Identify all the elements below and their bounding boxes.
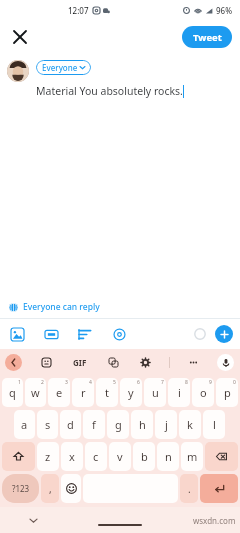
button[interactable]: b — [133, 442, 155, 471]
staticText: w — [31, 385, 40, 400]
staticText: g — [115, 417, 122, 432]
staticText: i — [178, 385, 181, 400]
button[interactable]: Voice input — [217, 354, 234, 371]
button[interactable]: o — [192, 378, 214, 407]
staticText: ?123 — [12, 483, 30, 494]
button[interactable]: i — [168, 378, 190, 407]
button[interactable]: s — [37, 410, 58, 439]
staticText: 4 — [89, 379, 92, 386]
staticText: z — [45, 449, 51, 464]
staticText: o — [200, 385, 207, 400]
staticText: Everyone can reply — [23, 301, 100, 313]
staticText: c — [93, 449, 99, 464]
button[interactable]: x — [61, 442, 83, 471]
button[interactable]: l — [203, 410, 225, 439]
staticText: 2 — [41, 379, 44, 386]
staticText: Everyone — [42, 62, 78, 73]
button[interactable]: Hide keyboard — [25, 512, 41, 528]
staticText: m — [187, 449, 198, 464]
staticText: a — [21, 417, 28, 432]
button[interactable]: Add poll — [75, 324, 95, 344]
staticText: s — [45, 417, 51, 432]
button[interactable]: Close — [6, 23, 34, 51]
staticText: y — [128, 385, 134, 400]
button[interactable]: , — [41, 474, 59, 503]
button[interactable]: Add location — [109, 324, 129, 344]
button[interactable]: y — [120, 378, 142, 407]
button[interactable]: Everyone can reply — [0, 296, 240, 318]
staticText: h — [139, 417, 146, 432]
button[interactable]: m — [181, 442, 203, 471]
button[interactable]: w — [25, 378, 46, 407]
staticText: f — [92, 417, 96, 432]
button[interactable]: q — [2, 378, 23, 407]
button[interactable]: c — [85, 442, 107, 471]
staticText: p — [224, 385, 231, 400]
button[interactable]: . — [180, 474, 198, 503]
button[interactable]: Settings — [137, 354, 154, 371]
staticText: q — [9, 385, 16, 400]
button[interactable]: Character count — [190, 324, 210, 344]
staticText: 0 — [233, 379, 236, 386]
button[interactable]: k — [179, 410, 201, 439]
staticText: Tweet — [193, 31, 222, 44]
button[interactable]: Sticker — [38, 354, 55, 371]
staticText: Material You absolutely rocks. — [36, 84, 183, 98]
staticText: GIF — [73, 357, 87, 368]
button[interactable]: Profile picture — [7, 60, 29, 82]
button[interactable]: r — [72, 378, 94, 407]
button[interactable]: f — [83, 410, 105, 439]
button[interactable]: Enter — [200, 474, 238, 503]
button[interactable]: Translate — [105, 354, 122, 371]
button[interactable]: Add tweet — [215, 325, 233, 343]
staticText: 96% — [216, 5, 232, 16]
button[interactable]: Backspace — [205, 442, 238, 471]
button[interactable]: e — [48, 378, 70, 407]
button[interactable]: GIF — [71, 355, 89, 370]
button[interactable]: z — [37, 442, 59, 471]
staticText: k — [187, 417, 193, 432]
staticText: 12:07 — [68, 5, 89, 16]
staticText: n — [165, 449, 172, 464]
staticText: 7 — [161, 379, 164, 386]
staticText: 8 — [185, 379, 188, 386]
button[interactable]: j — [155, 410, 177, 439]
staticText: wsxdn.com — [193, 515, 236, 526]
staticText: j — [165, 417, 168, 432]
button[interactable]: More — [185, 354, 202, 371]
staticText: x — [69, 449, 75, 464]
button[interactable]: ?123 — [2, 474, 39, 503]
button[interactable]: h — [131, 410, 153, 439]
staticText: v — [117, 449, 123, 464]
staticText: b — [141, 449, 148, 464]
button[interactable]: d — [60, 410, 81, 439]
staticText: . — [188, 482, 191, 496]
button[interactable]: v — [109, 442, 131, 471]
button[interactable]: Back — [5, 354, 22, 371]
button[interactable]: Emoji — [61, 474, 81, 503]
button[interactable]: u — [144, 378, 166, 407]
staticText: 1 — [18, 379, 21, 386]
button[interactable]: Shift — [2, 442, 35, 471]
button[interactable]: t — [96, 378, 118, 407]
button[interactable]: Add photo — [7, 324, 27, 344]
button[interactable]: Add GIF — [41, 324, 61, 344]
staticText: , — [49, 482, 52, 496]
staticText: d — [67, 417, 74, 432]
staticText: r — [81, 385, 86, 400]
staticText: 5 — [113, 379, 116, 386]
button[interactable]: g — [107, 410, 129, 439]
staticText: 3 — [65, 379, 68, 386]
button[interactable]: n — [157, 442, 179, 471]
button[interactable]: Tweet — [182, 26, 232, 48]
staticText: u — [152, 385, 159, 400]
button[interactable]: Everyone — [36, 60, 91, 75]
staticText: 9 — [209, 379, 212, 386]
staticText: e — [56, 385, 63, 400]
staticText: 6 — [137, 379, 140, 386]
staticText: l — [213, 417, 216, 432]
button[interactable]: p — [216, 378, 238, 407]
button[interactable]: a — [14, 410, 35, 439]
staticText: t — [105, 385, 109, 400]
